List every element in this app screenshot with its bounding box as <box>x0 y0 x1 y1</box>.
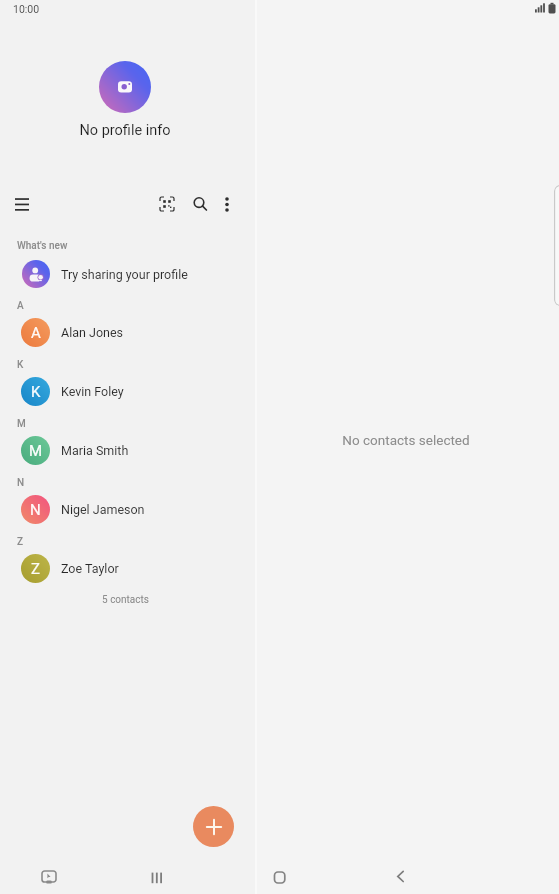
button[interactable] <box>0 495 255 524</box>
button[interactable] <box>0 553 255 582</box>
button[interactable] <box>267 864 293 890</box>
staticText: No contacts selected <box>342 432 470 448</box>
staticText: Alan Jones <box>61 325 124 340</box>
staticText: M <box>29 442 43 460</box>
staticText: What's new <box>17 240 68 252</box>
button[interactable] <box>146 864 168 890</box>
button[interactable] <box>159 196 175 212</box>
staticText: Kevin Foley <box>61 384 124 399</box>
staticText: M <box>17 418 26 430</box>
staticText: 5 contacts <box>102 594 149 606</box>
staticText: Maria Smith <box>61 443 129 458</box>
staticText: K <box>17 359 24 371</box>
button[interactable] <box>0 259 255 288</box>
staticText: A <box>17 300 24 312</box>
staticText: 10:00 <box>13 3 40 15</box>
button[interactable] <box>219 196 235 213</box>
staticText: No profile info <box>79 122 171 139</box>
staticText: Z <box>31 560 40 578</box>
staticText: N <box>17 477 25 489</box>
staticText: N <box>30 501 41 519</box>
staticText: Nigel Jameson <box>61 502 145 517</box>
button[interactable] <box>192 196 209 213</box>
button[interactable] <box>0 318 255 347</box>
staticText: Z <box>17 536 24 548</box>
button[interactable] <box>193 806 234 847</box>
button[interactable] <box>8 197 36 212</box>
button[interactable] <box>390 864 412 890</box>
staticText: Zoe Taylor <box>61 561 119 576</box>
button[interactable] <box>36 864 62 890</box>
button[interactable] <box>0 377 255 406</box>
button[interactable] <box>0 436 255 465</box>
staticText: K <box>31 383 41 401</box>
button[interactable] <box>99 61 151 113</box>
staticText: Try sharing your profile <box>61 267 188 282</box>
staticText: A <box>31 324 41 342</box>
